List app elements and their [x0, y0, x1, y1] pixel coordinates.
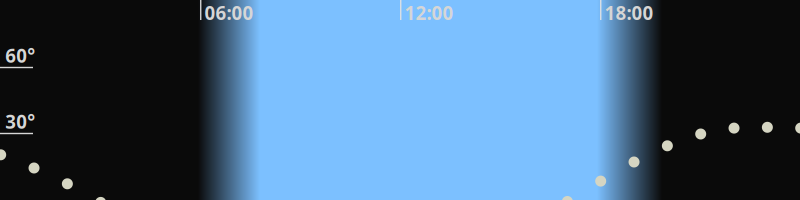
- staticText: 30°: [5, 109, 35, 134]
- staticText: 60°: [5, 43, 35, 68]
- staticText: 12:00: [404, 0, 453, 25]
- staticText: 06:00: [204, 0, 253, 25]
- staticText: 18:00: [604, 0, 653, 25]
